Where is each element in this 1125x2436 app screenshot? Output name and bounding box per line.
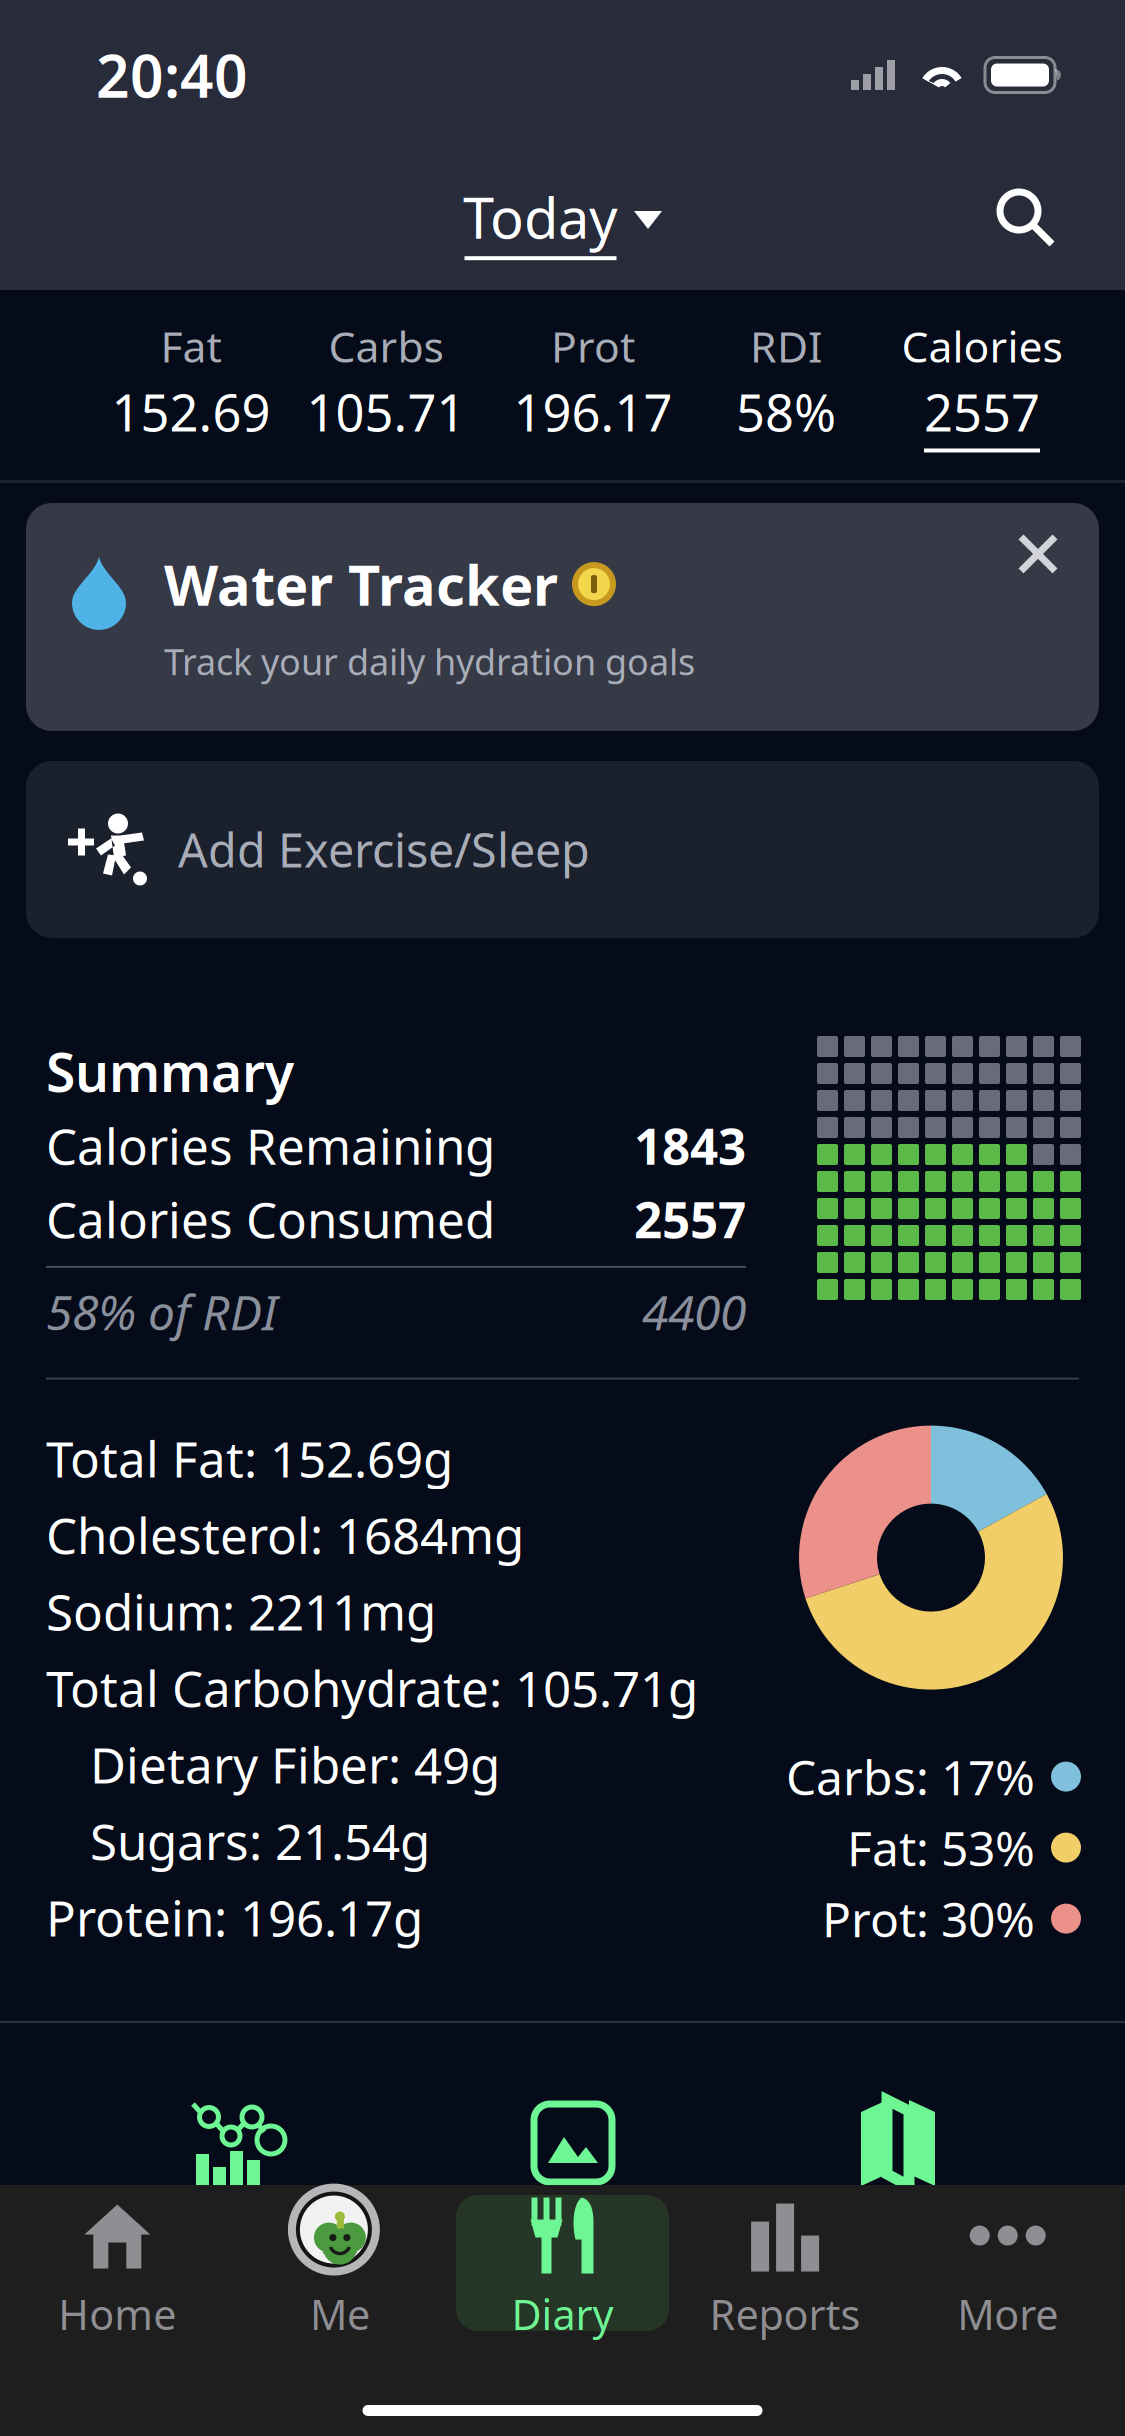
staticText: Total Fat: 152.69g xyxy=(46,1426,453,1491)
staticText: More xyxy=(957,2287,1058,2341)
staticText: Dietary Fiber: 49g xyxy=(90,1732,500,1797)
staticText: Carbs: 17% xyxy=(786,1745,1035,1808)
button[interactable]: Search xyxy=(977,169,1079,271)
staticText: 20:40 xyxy=(96,36,248,114)
staticText: 1843 xyxy=(634,1113,746,1178)
staticText: Add Exercise/Sleep xyxy=(178,818,590,880)
staticText: Summary xyxy=(46,1036,294,1107)
button[interactable]: Map xyxy=(861,2100,935,2186)
staticText: Cholesterol: 1684mg xyxy=(46,1502,524,1568)
staticText: Fat xyxy=(160,317,221,374)
button[interactable]: Trends xyxy=(190,2093,285,2193)
button[interactable]: Prot xyxy=(513,317,672,452)
button[interactable]: Diary xyxy=(451,2195,674,2331)
button[interactable]: Today xyxy=(449,170,676,270)
staticText: 58% of RDI xyxy=(46,1280,278,1343)
button[interactable]: Home xyxy=(6,2195,229,2331)
staticText: 152.69 xyxy=(111,378,270,445)
button[interactable]: More xyxy=(896,2195,1119,2331)
button[interactable]: Calories xyxy=(901,317,1062,452)
staticText: Home xyxy=(58,2287,176,2341)
staticText: Me xyxy=(310,2287,370,2341)
staticText: 2557 xyxy=(634,1186,746,1252)
staticText: Reports xyxy=(710,2287,861,2341)
button[interactable]: Me xyxy=(229,2195,451,2331)
staticText: 58% xyxy=(736,378,836,445)
staticText: Calories xyxy=(901,317,1062,374)
button[interactable]: Carbs xyxy=(306,317,465,452)
staticText: Sugars: 21.54g xyxy=(90,1808,430,1874)
staticText: Sodium: 2211mg xyxy=(46,1579,436,1644)
staticText: Today xyxy=(463,180,618,254)
staticText: Carbs xyxy=(328,317,443,374)
staticText: Prot xyxy=(551,317,635,374)
button[interactable]: Photos xyxy=(534,2104,612,2182)
staticText: Protein: 196.17g xyxy=(46,1885,423,1950)
staticText: Water Tracker xyxy=(164,547,558,621)
staticText: Calories Remaining xyxy=(46,1113,495,1178)
staticText: Fat: 53% xyxy=(847,1816,1035,1879)
staticText: Track your daily hydration goals xyxy=(164,637,695,685)
button[interactable]: Add Exercise/Sleep xyxy=(26,761,1099,938)
button[interactable]: Fat xyxy=(111,317,270,452)
staticText: Calories Consumed xyxy=(46,1186,495,1252)
button[interactable]: Water Tracker xyxy=(26,503,1099,731)
staticText: 4400 xyxy=(642,1280,746,1343)
button[interactable]: Dismiss xyxy=(999,515,1077,593)
staticText: Diary xyxy=(511,2287,613,2341)
button[interactable]: Reports xyxy=(674,2195,896,2331)
staticText: 105.71 xyxy=(306,378,465,445)
staticText: 2557 xyxy=(924,378,1040,445)
staticText: 196.17 xyxy=(513,378,672,445)
staticText: Prot: 30% xyxy=(822,1887,1035,1950)
staticText: Total Carbohydrate: 105.71g xyxy=(46,1655,698,1721)
button[interactable]: RDI xyxy=(736,317,836,452)
staticText: RDI xyxy=(750,317,822,374)
